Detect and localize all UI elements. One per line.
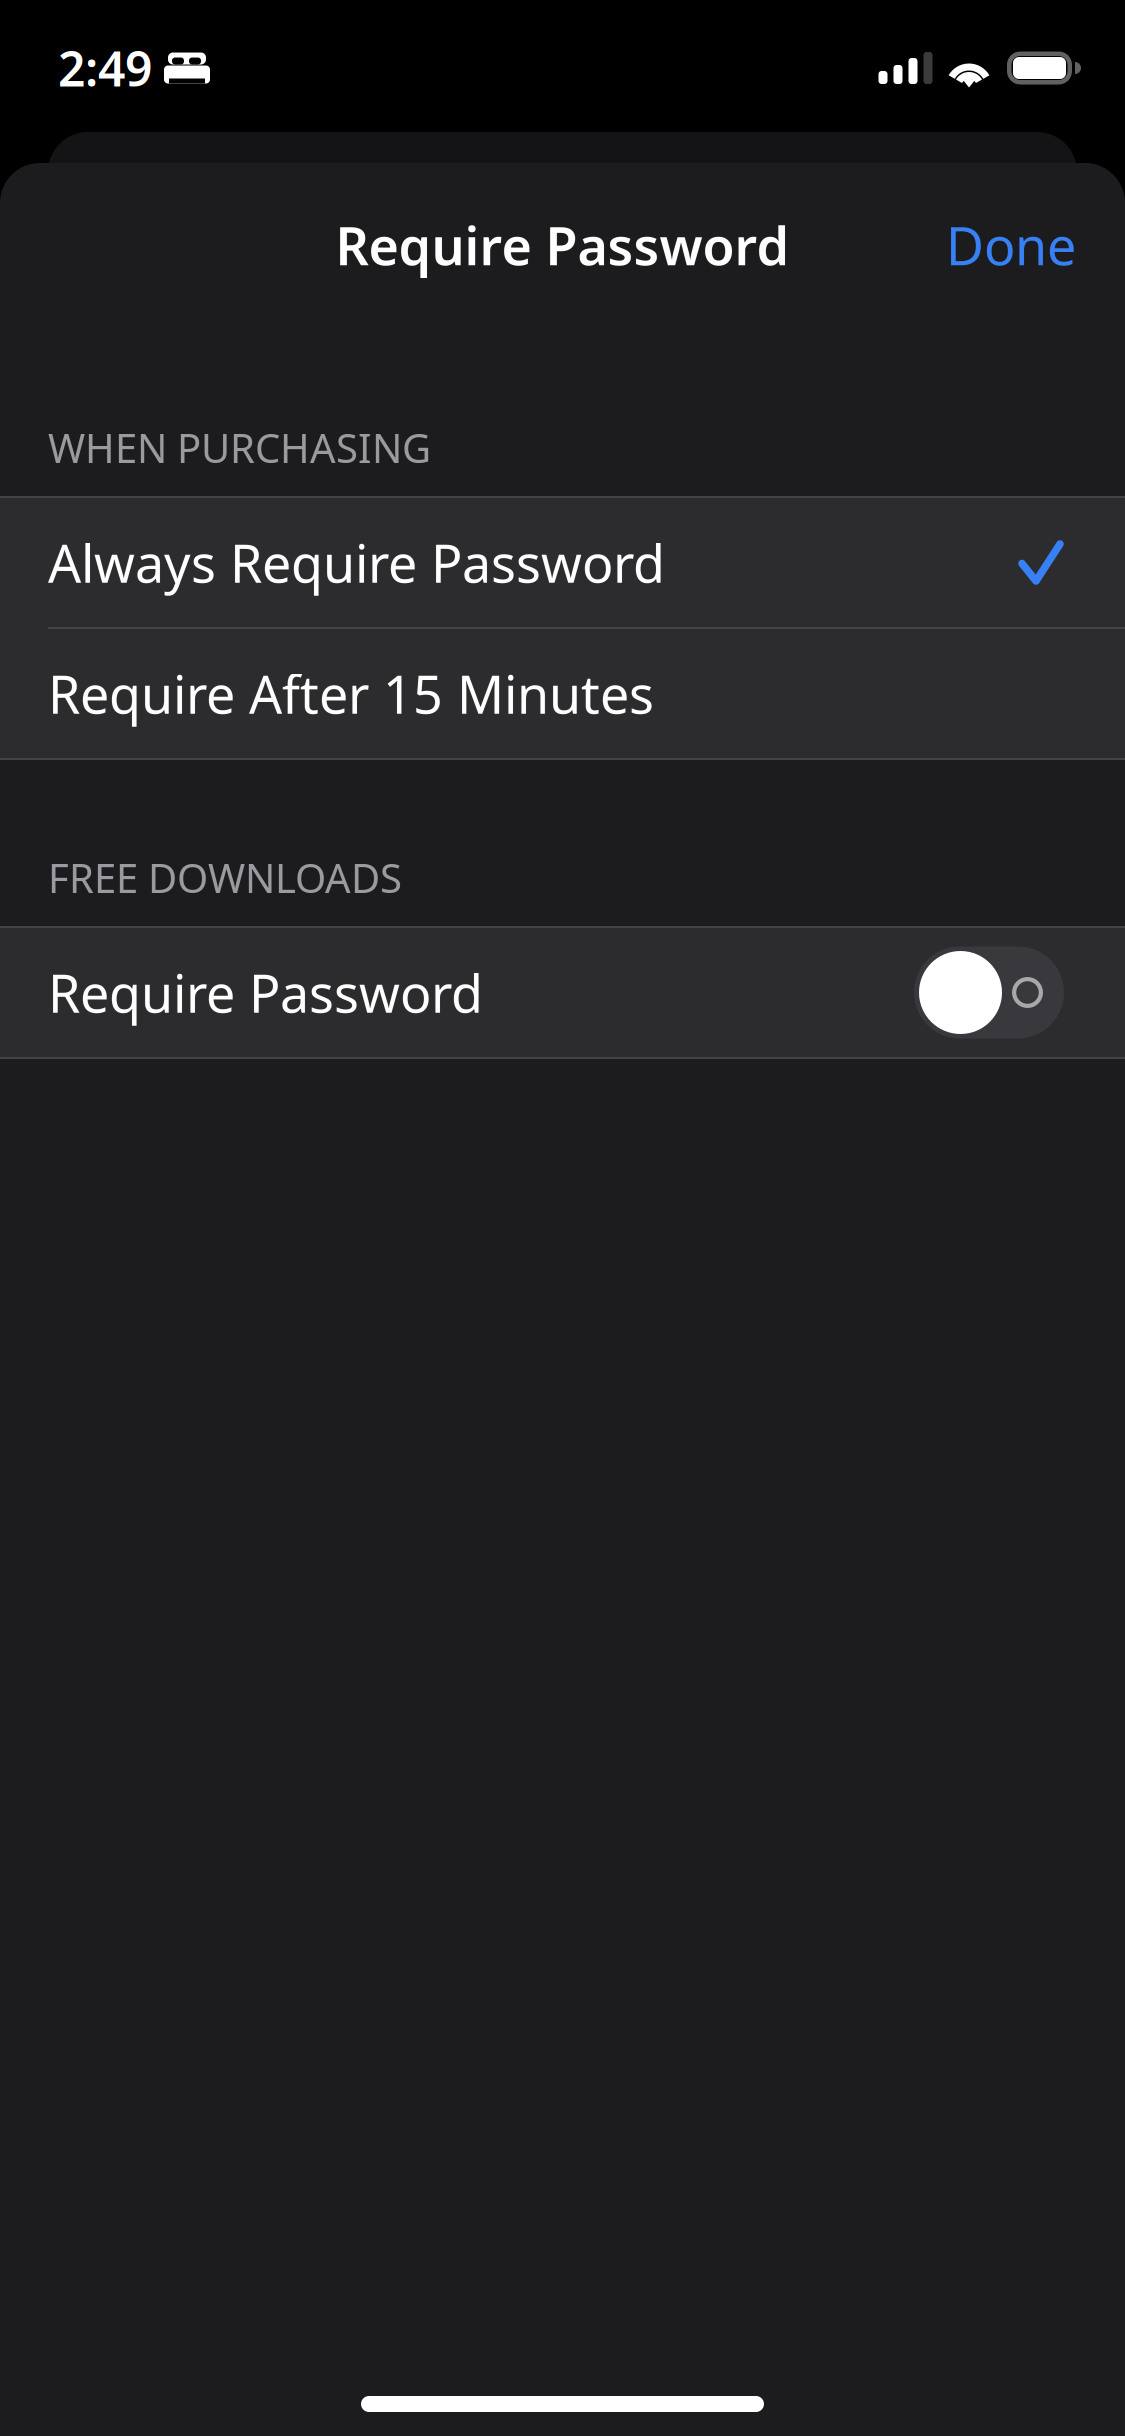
button[interactable]: Always Require Password	[0, 498, 1125, 627]
staticText: Require Password	[48, 958, 483, 1027]
button[interactable]: Require Password	[0, 928, 1125, 1057]
staticText: Done	[946, 210, 1076, 280]
staticText: Always Require Password	[48, 528, 665, 597]
staticText: FREE DOWNLOADS	[48, 851, 402, 904]
button[interactable]: Require After 15 Minutes	[0, 629, 1125, 758]
button[interactable]: Done	[924, 192, 1098, 298]
staticText: WHEN PURCHASING	[48, 421, 431, 474]
staticText: Require Password	[335, 210, 789, 280]
staticText: Require After 15 Minutes	[48, 659, 654, 728]
staticText: 2:49	[58, 36, 152, 100]
